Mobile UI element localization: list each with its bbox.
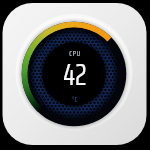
button[interactable]: CPU temperature gauge xyxy=(0,0,150,150)
